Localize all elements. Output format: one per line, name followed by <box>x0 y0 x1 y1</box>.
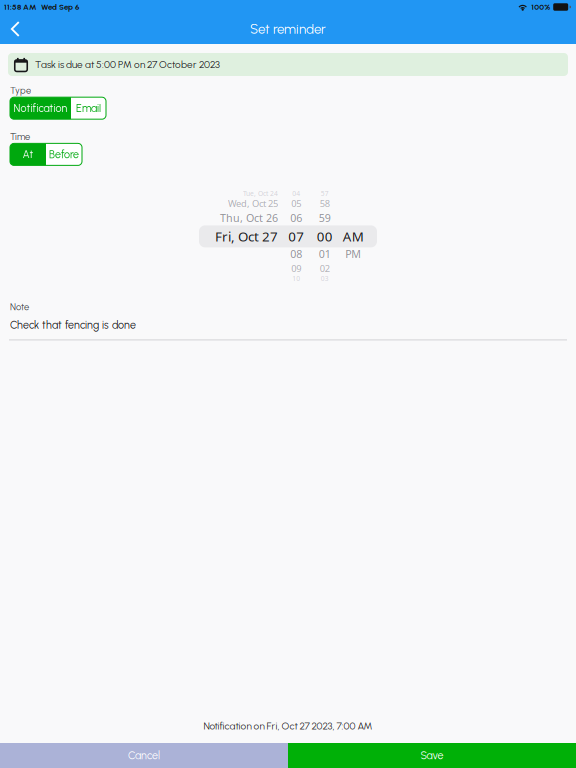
staticText: Notification <box>13 102 67 115</box>
staticText: PM <box>345 247 361 261</box>
staticText: 10 <box>292 274 300 283</box>
staticText: Wed, Oct 25 <box>228 197 278 210</box>
staticText: Task is due at 5:00 PM on 27 October 202… <box>35 58 220 70</box>
staticText: 00 <box>317 227 333 245</box>
staticText: Tue, Oct 24 <box>243 189 278 198</box>
staticText: Thu, Oct 26 <box>220 211 278 225</box>
staticText: 06 <box>290 211 302 225</box>
staticText: 08 <box>290 247 302 261</box>
staticText: 01 <box>319 247 331 261</box>
staticText: 04 <box>292 189 300 198</box>
staticText: 58 <box>320 197 330 210</box>
staticText: AM <box>343 227 364 245</box>
staticText: Check that fencing is done <box>10 319 136 331</box>
staticText: 59 <box>319 211 331 225</box>
staticText: Note <box>10 301 29 313</box>
button[interactable]: Cancel <box>0 743 288 768</box>
button[interactable]: At <box>10 143 46 165</box>
staticText: Set reminder <box>250 21 326 37</box>
staticText: 11:58 AM <box>4 2 36 12</box>
button[interactable]: Before <box>46 143 82 165</box>
staticText: Wed Sep 6 <box>41 2 79 12</box>
staticText: At <box>22 148 33 161</box>
staticText: 03 <box>321 274 329 283</box>
button[interactable]: Back <box>0 15 30 43</box>
staticText: 05 <box>291 197 301 210</box>
staticText: 02 <box>320 262 330 275</box>
staticText: 100% <box>531 2 550 12</box>
staticText: Save <box>420 749 443 762</box>
staticText: Before <box>49 148 79 161</box>
staticText: 09 <box>291 262 301 275</box>
staticText: Cancel <box>128 749 160 762</box>
staticText: 57 <box>321 189 329 198</box>
staticText: Email <box>76 102 101 115</box>
staticText: Type <box>10 85 31 96</box>
staticText: Fri, Oct 27 <box>215 227 278 245</box>
staticText: 07 <box>288 227 304 245</box>
button[interactable]: Save <box>288 743 576 768</box>
button[interactable]: Notification <box>10 97 71 119</box>
staticText: Notification on Fri, Oct 27 2023, 7:00 A… <box>203 720 372 732</box>
button[interactable]: Email <box>71 97 106 119</box>
staticText: Time <box>10 131 30 142</box>
